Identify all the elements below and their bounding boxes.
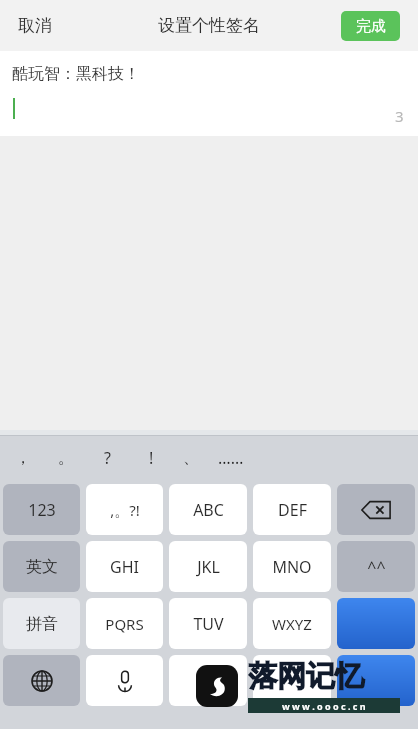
button[interactable]: ，: [4, 440, 42, 476]
staticText: 落网记忆: [248, 658, 364, 695]
button[interactable]: 取消: [14, 9, 56, 42]
staticText: 123: [28, 499, 56, 521]
button[interactable]: !: [132, 440, 170, 476]
button[interactable]: 英文: [3, 541, 80, 592]
button[interactable]: DEF: [253, 484, 331, 535]
button[interactable]: [337, 655, 415, 706]
staticText: ,。?!: [110, 500, 140, 520]
button[interactable]: ?: [88, 440, 126, 476]
button[interactable]: PQRS: [86, 598, 163, 649]
staticText: 设置个性签名: [158, 15, 260, 36]
button[interactable]: 、: [172, 440, 210, 476]
staticText: WXYZ: [272, 614, 312, 634]
staticText: 完成: [356, 17, 386, 36]
staticText: ……: [218, 447, 244, 469]
button[interactable]: MNO: [253, 541, 331, 592]
staticText: MNO: [272, 556, 312, 578]
button[interactable]: TUV: [169, 598, 247, 649]
button[interactable]: GHI: [86, 541, 163, 592]
staticText: !: [149, 447, 154, 469]
staticText: TUV: [193, 613, 224, 635]
button[interactable]: 拼音: [3, 598, 80, 649]
button[interactable]: [337, 598, 415, 649]
staticText: 。: [58, 448, 74, 468]
button[interactable]: 。: [47, 440, 85, 476]
button[interactable]: 123: [3, 484, 80, 535]
staticText: 拼音: [26, 614, 58, 634]
button[interactable]: WXYZ: [253, 598, 331, 649]
staticText: ?: [104, 447, 111, 469]
button[interactable]: ABC: [169, 484, 247, 535]
button[interactable]: ^^: [337, 541, 415, 592]
staticText: PQRS: [105, 614, 144, 634]
staticText: ，: [15, 448, 31, 468]
staticText: JKL: [197, 556, 220, 578]
staticText: ^^: [367, 556, 386, 578]
staticText: GHI: [110, 556, 139, 578]
button[interactable]: ……: [212, 440, 250, 476]
button[interactable]: Voice input: [86, 655, 163, 706]
staticText: ABC: [193, 499, 224, 521]
button[interactable]: [169, 655, 247, 706]
staticText: 、: [183, 448, 199, 468]
staticText: 英文: [26, 557, 58, 577]
button[interactable]: [253, 655, 331, 706]
staticText: DEF: [278, 499, 307, 521]
button[interactable]: 完成: [341, 11, 400, 41]
staticText: w w w . o o o c . c n: [282, 700, 366, 712]
staticText: 酷玩智：黑科技！: [12, 64, 140, 84]
button[interactable]: ,。?!: [86, 484, 163, 535]
staticText: 3: [395, 106, 404, 126]
button[interactable]: JKL: [169, 541, 247, 592]
staticText: 取消: [18, 15, 52, 36]
button[interactable]: Delete: [337, 484, 415, 535]
button[interactable]: Switch language: [3, 655, 80, 706]
